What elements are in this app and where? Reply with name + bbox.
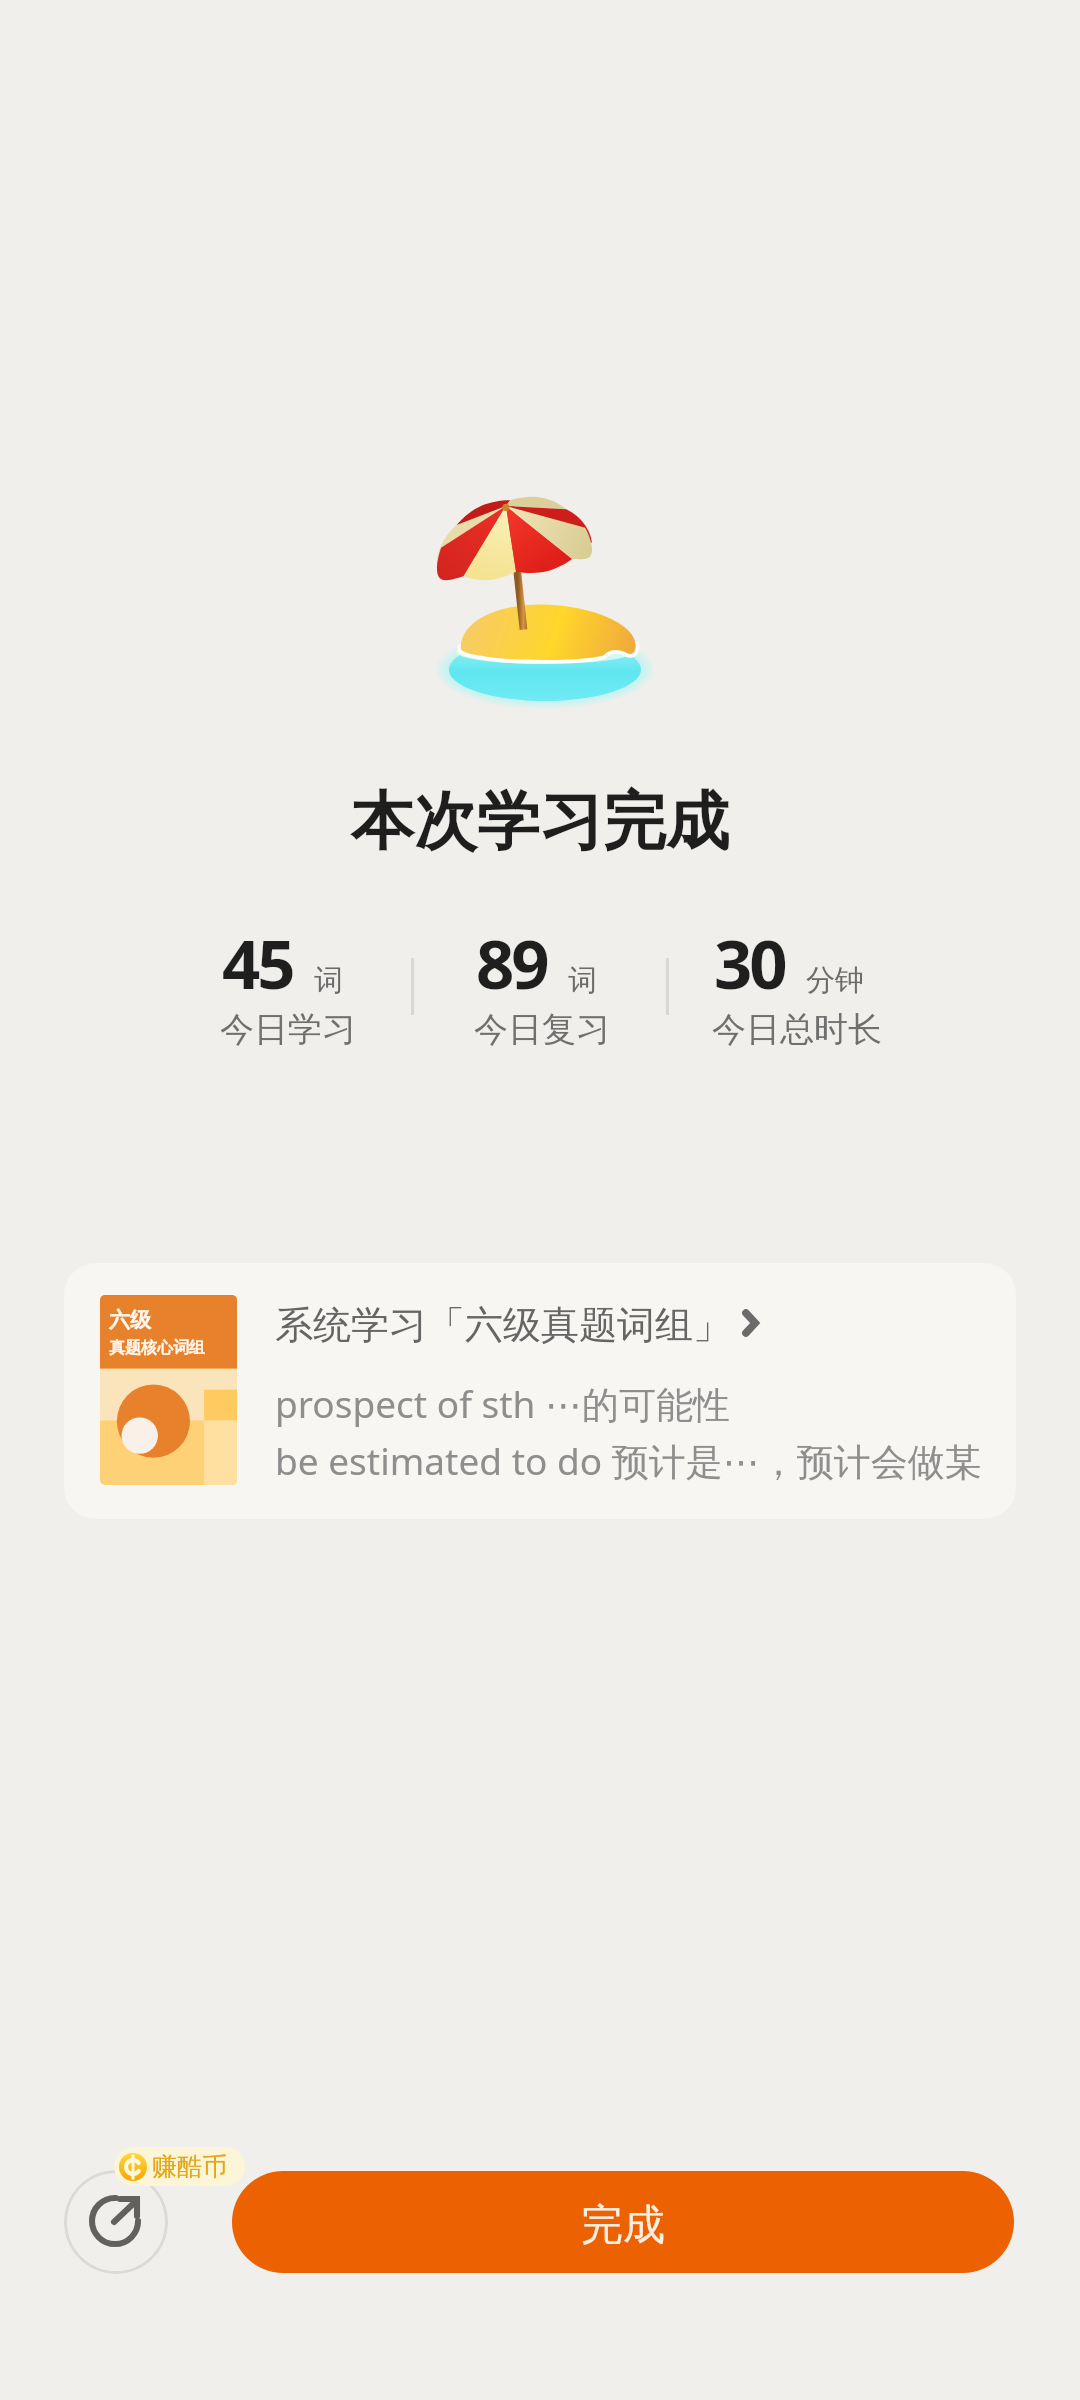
- staticText: prospect of sth ⋯的可能性: [275, 1378, 731, 1429]
- staticText: be estimated to do 预计是⋯，预计会做某: [275, 1435, 982, 1486]
- button[interactable]: Share: [64, 2170, 168, 2274]
- staticText: 今日学习: [220, 1008, 356, 1051]
- staticText: 词: [314, 962, 343, 999]
- staticText: 45: [222, 917, 293, 1008]
- button[interactable]: 完成: [232, 2171, 1014, 2273]
- staticText: 30: [714, 917, 785, 1008]
- staticText: 今日总时长: [712, 1008, 882, 1051]
- staticText: 今日复习: [474, 1008, 610, 1051]
- button[interactable]: 六级: [64, 1263, 1016, 1519]
- staticText: 真题核心词组: [109, 1338, 205, 1358]
- button[interactable]: 赚酷币: [114, 2147, 245, 2186]
- staticText: 89: [476, 917, 547, 1008]
- staticText: 本次学习完成: [351, 782, 729, 861]
- staticText: 系统学习「六级真题词组」: [275, 1301, 731, 1349]
- staticText: 赚酷币: [152, 2151, 227, 2182]
- staticText: 词: [568, 962, 597, 999]
- staticText: 分钟: [806, 962, 864, 999]
- staticText: 完成: [581, 2199, 665, 2252]
- staticText: 六级: [109, 1307, 151, 1333]
